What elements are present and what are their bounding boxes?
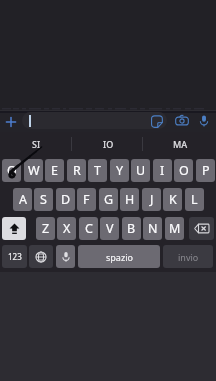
button[interactable]: N xyxy=(143,217,162,240)
staticText: P xyxy=(202,162,210,179)
button[interactable]: X xyxy=(57,217,76,240)
staticText: C xyxy=(85,220,93,237)
button[interactable] xyxy=(29,245,53,268)
staticText: J xyxy=(150,191,154,208)
staticText: K xyxy=(169,191,177,208)
staticText: invio xyxy=(178,251,199,263)
button[interactable]: W xyxy=(24,159,43,182)
staticText: A xyxy=(19,191,27,208)
button[interactable]: U xyxy=(131,159,150,182)
staticText: E xyxy=(51,162,58,179)
button[interactable]: M xyxy=(165,217,184,240)
button[interactable]: S xyxy=(34,188,53,211)
button[interactable]: P xyxy=(196,159,215,182)
button[interactable]: O xyxy=(174,159,193,182)
button[interactable]: J xyxy=(142,188,161,211)
button[interactable] xyxy=(22,112,167,129)
staticText: G xyxy=(104,191,114,208)
button[interactable]: L xyxy=(185,188,204,211)
staticText: IO xyxy=(103,138,114,150)
button[interactable]: H xyxy=(120,188,139,211)
staticText: L xyxy=(191,191,198,208)
staticText: B xyxy=(127,220,136,237)
staticText: MA xyxy=(173,138,188,150)
button[interactable]: SI xyxy=(0,133,72,155)
staticText: SI xyxy=(32,138,41,150)
staticText: R xyxy=(73,162,81,179)
button[interactable]: Voice message xyxy=(195,111,212,131)
staticText: X xyxy=(63,220,71,237)
button[interactable]: invio xyxy=(163,245,213,268)
button[interactable]: V xyxy=(100,217,119,240)
button[interactable]: I xyxy=(153,159,172,182)
button[interactable] xyxy=(189,217,214,240)
button[interactable]: R xyxy=(67,159,86,182)
button[interactable]: D xyxy=(56,188,75,211)
staticText: spazio xyxy=(106,251,133,263)
staticText: W xyxy=(28,162,40,179)
button[interactable]: Stickers xyxy=(148,111,165,131)
staticText: V xyxy=(106,220,114,237)
button[interactable]: G xyxy=(99,188,118,211)
staticText: O xyxy=(179,162,189,179)
button[interactable]: Q xyxy=(2,159,21,182)
staticText: F xyxy=(83,191,90,208)
button[interactable]: A xyxy=(13,188,32,211)
staticText: D xyxy=(61,191,71,208)
button[interactable]: MA xyxy=(144,133,216,155)
button[interactable] xyxy=(56,245,75,268)
staticText: I xyxy=(160,162,165,179)
button[interactable]: Add attachment xyxy=(1,111,21,132)
staticText: H xyxy=(125,191,135,208)
staticText: T xyxy=(94,162,101,179)
button[interactable]: 123 xyxy=(2,245,27,268)
staticText: 123 xyxy=(8,251,22,262)
staticText: N xyxy=(148,220,158,237)
button[interactable]: E xyxy=(45,159,64,182)
button[interactable]: Camera xyxy=(173,111,190,131)
button[interactable]: spazio xyxy=(78,245,160,268)
staticText: S xyxy=(40,191,47,208)
button[interactable]: B xyxy=(122,217,141,240)
staticText: M xyxy=(169,220,181,237)
button[interactable]: Y xyxy=(110,159,129,182)
staticText: Q xyxy=(7,162,17,179)
button[interactable]: K xyxy=(163,188,182,211)
staticText: Y xyxy=(116,162,124,179)
button[interactable]: T xyxy=(88,159,107,182)
button[interactable]: IO xyxy=(72,133,144,155)
button[interactable]: F xyxy=(77,188,96,211)
button[interactable]: C xyxy=(79,217,98,240)
button[interactable] xyxy=(2,217,26,240)
button[interactable]: Z xyxy=(36,217,55,240)
staticText: U xyxy=(136,162,146,179)
staticText: Z xyxy=(42,220,50,237)
